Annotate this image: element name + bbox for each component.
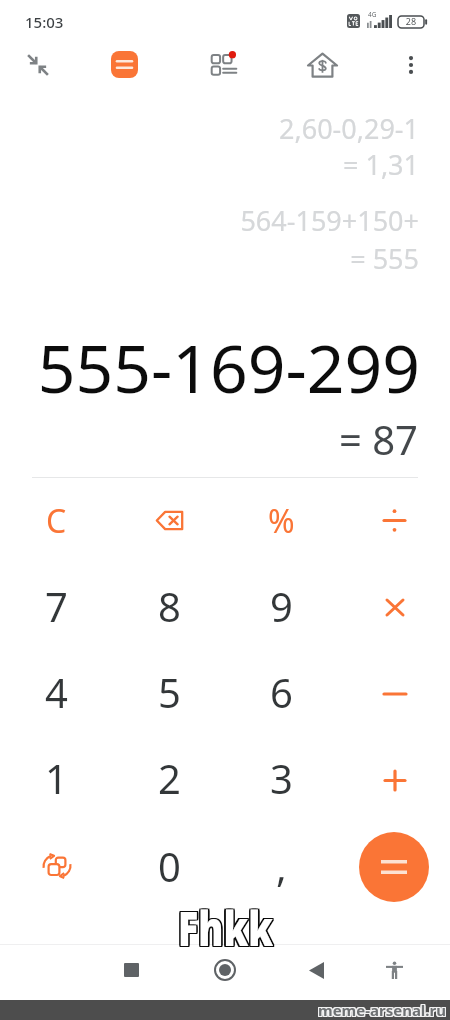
button[interactable]: Accessibility — [379, 954, 410, 985]
staticText: Fhkk — [178, 895, 273, 961]
staticText: meme-arsenal.ru — [319, 1001, 448, 1020]
staticText: meme-arsenal.ru — [317, 1001, 446, 1020]
staticText: = 555 — [0, 240, 419, 277]
staticText: Fhkk — [179, 895, 275, 961]
button[interactable]: 3 — [225, 734, 338, 821]
staticText: % — [268, 499, 295, 543]
button[interactable]: More options — [391, 45, 431, 85]
staticText: 9 — [270, 579, 293, 633]
button[interactable]: 5 — [113, 648, 226, 735]
staticText: 2,60-0,29-1 — [0, 110, 419, 147]
staticText: meme-arsenal.ru — [319, 1000, 448, 1020]
button[interactable]: 4 — [0, 648, 113, 735]
staticText: 2 — [158, 751, 181, 805]
button[interactable]: Equals — [359, 832, 429, 902]
staticText: 5 — [158, 665, 181, 719]
staticText: 28 — [398, 15, 424, 27]
button[interactable]: 7 — [0, 562, 113, 649]
button[interactable]: , — [225, 822, 338, 909]
staticText: Fhkk — [176, 896, 271, 962]
staticText: Fhkk — [179, 896, 275, 962]
staticText: = 1,31 — [0, 146, 419, 183]
staticText: 7 — [45, 579, 68, 633]
button[interactable]: Loan calculator — [300, 43, 344, 87]
staticText: Fhkk — [178, 894, 273, 960]
button[interactable]: Unit converter — [0, 822, 113, 909]
staticText: 0 — [158, 839, 181, 893]
button[interactable]: Backspace — [113, 477, 226, 564]
button[interactable]: 0 — [113, 822, 226, 909]
staticText: meme-arsenal.ru — [317, 999, 446, 1019]
button[interactable]: Converters — [202, 43, 246, 87]
staticText: , — [276, 839, 287, 893]
staticText: meme-arsenal.ru — [319, 999, 448, 1019]
button[interactable]: Divide — [338, 477, 450, 564]
staticText: 15:03 — [25, 12, 64, 32]
button[interactable]: 9 — [225, 562, 338, 649]
staticText: 564-159+150+ — [0, 202, 419, 239]
button[interactable]: Home — [210, 955, 240, 985]
staticText: Fhkk — [176, 894, 271, 960]
staticText: 555-169-299 — [0, 322, 420, 412]
button[interactable]: C — [0, 477, 113, 564]
staticText: 4 — [45, 665, 68, 719]
staticText: Fhkk — [179, 894, 275, 960]
staticText: meme-arsenal.ru — [318, 999, 447, 1019]
button[interactable]: Calculator — [111, 51, 138, 78]
button[interactable]: Minus — [338, 648, 450, 735]
staticText: meme-arsenal.ru — [318, 1000, 447, 1020]
button[interactable]: 2 — [113, 734, 226, 821]
staticText: = 87 — [0, 412, 418, 466]
staticText: 1 — [45, 751, 68, 805]
button[interactable]: Multiply — [338, 562, 450, 649]
staticText: 4G — [368, 10, 377, 19]
button[interactable]: % — [225, 477, 338, 564]
button[interactable]: Plus — [338, 734, 450, 821]
button[interactable]: Recent apps — [116, 955, 146, 985]
staticText: C — [46, 499, 67, 543]
button[interactable]: Collapse — [18, 45, 58, 85]
button[interactable]: Back — [301, 955, 331, 985]
staticText: meme-arsenal.ru — [317, 1000, 446, 1020]
staticText: 8 — [158, 579, 181, 633]
button[interactable]: 1 — [0, 734, 113, 821]
staticText: Fhkk — [178, 896, 273, 962]
staticText: 3 — [270, 751, 293, 805]
button[interactable]: 6 — [225, 648, 338, 735]
staticText: 6 — [270, 665, 293, 719]
button[interactable]: 8 — [113, 562, 226, 649]
staticText: Fhkk — [176, 895, 271, 961]
staticText: meme-arsenal.ru — [318, 1001, 447, 1020]
